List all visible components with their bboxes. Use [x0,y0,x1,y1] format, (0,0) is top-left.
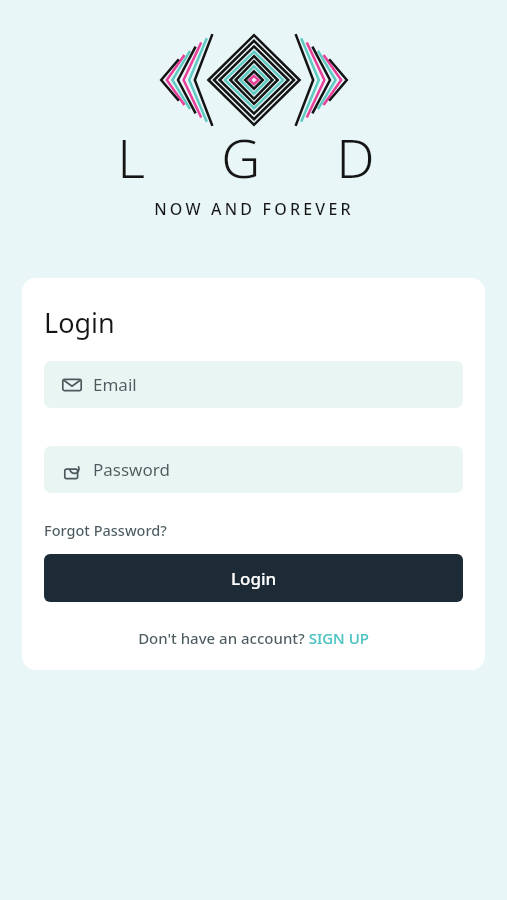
staticText: Login [231,567,277,590]
staticText: Login [44,304,115,341]
staticText: Password [93,458,170,481]
button[interactable]: Password [44,446,463,493]
button[interactable]: Forgot Password? [44,520,167,540]
button[interactable]: Login [44,554,463,602]
button[interactable]: Don't have an account? SIGN UP [44,628,463,648]
staticText: Don't have an account? SIGN UP [138,628,369,648]
staticText: Forgot Password? [44,520,167,540]
button[interactable]: Email [44,361,463,408]
staticText: NOW AND FOREVER [154,198,354,220]
staticText: L G D [117,120,391,194]
staticText: Email [93,373,137,396]
